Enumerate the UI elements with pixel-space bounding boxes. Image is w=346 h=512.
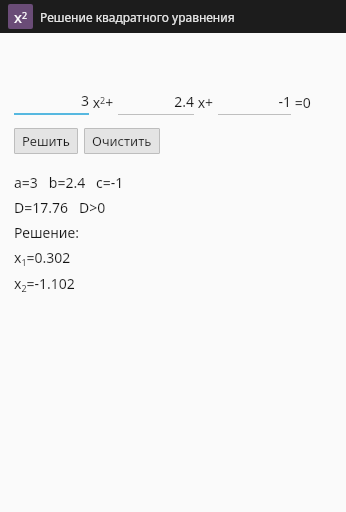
staticText: D=17.76 D>0	[14, 198, 106, 217]
button[interactable]: -1	[218, 92, 291, 115]
button[interactable]: 3	[14, 91, 89, 115]
button[interactable]: Решить	[14, 128, 78, 154]
staticText: Решение квадратного уравнения	[40, 9, 235, 25]
staticText: x2=-1.102	[14, 274, 75, 294]
staticText: 2.4	[118, 92, 194, 111]
staticText: x2+	[89, 93, 114, 112]
staticText: x1=0.302	[14, 248, 71, 268]
staticText: Решить	[22, 132, 70, 150]
staticText: x+	[194, 93, 214, 112]
staticText: 3	[14, 91, 89, 110]
staticText: a=3 b=2.4 c=-1	[14, 173, 124, 192]
staticText: x2	[14, 7, 28, 27]
button[interactable]: 2.4	[118, 92, 194, 115]
button[interactable]: Очистить	[84, 128, 160, 154]
button[interactable]: App icon	[8, 4, 33, 29]
staticText: -1	[218, 92, 291, 111]
staticText: Решение:	[14, 223, 80, 242]
staticText: =0	[291, 93, 311, 112]
staticText: Очистить	[92, 132, 152, 150]
